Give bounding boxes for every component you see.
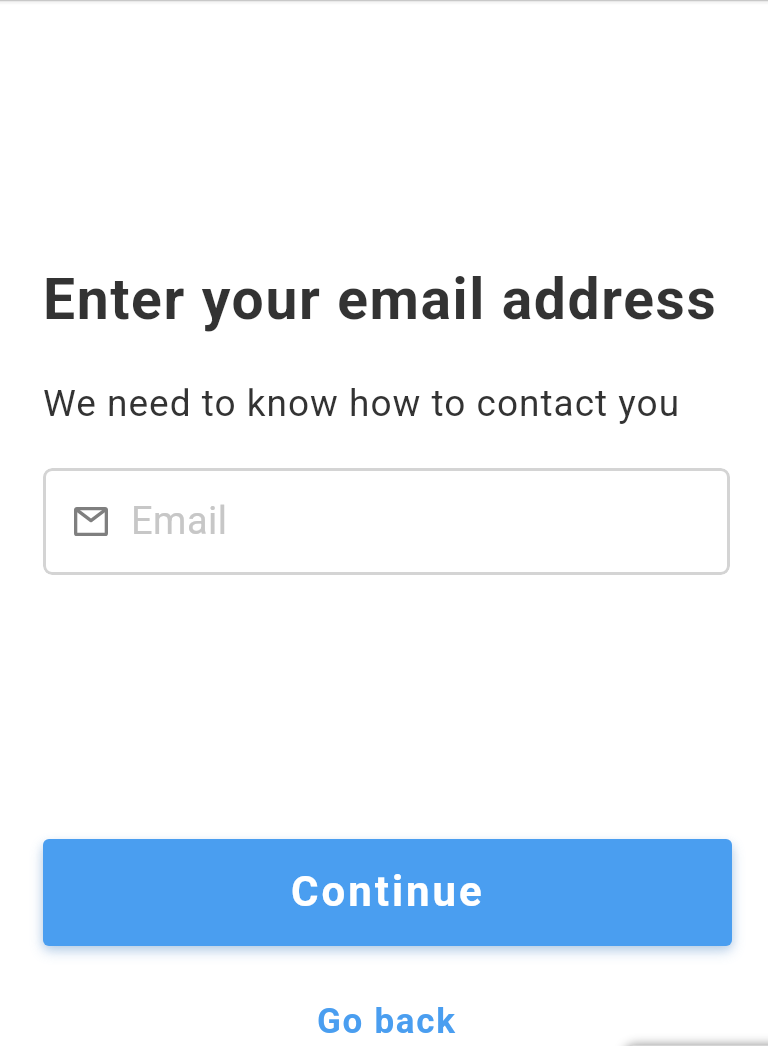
button[interactable]: Go back [300, 992, 474, 1046]
staticText: We need to know how to contact you [43, 382, 681, 425]
other: Email [74, 507, 108, 536]
staticText: Email [131, 499, 228, 544]
staticText: Go back [317, 1001, 457, 1042]
staticText: Enter your email address [43, 266, 718, 333]
staticText: Continue [291, 867, 485, 916]
button[interactable]: Continue [43, 839, 732, 946]
button[interactable]: Email [43, 468, 730, 575]
